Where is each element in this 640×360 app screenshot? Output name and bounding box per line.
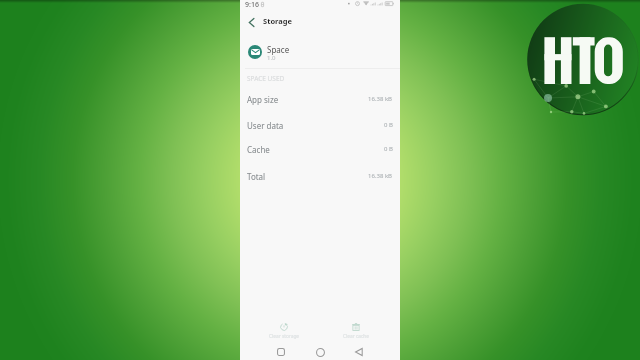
button[interactable]: Back	[339, 344, 379, 360]
button[interactable]: Back	[240, 11, 262, 33]
button[interactable]: App size	[240, 86, 400, 112]
staticText: 0 B	[384, 121, 393, 129]
button[interactable]: Clear storage	[260, 318, 308, 340]
staticText: 1.0	[267, 54, 276, 62]
button[interactable]: Recent apps	[261, 344, 301, 360]
staticText: 16.38 kB	[368, 172, 393, 180]
staticText: Storage	[263, 16, 292, 26]
staticText: 9:16	[245, 0, 259, 10]
staticText: Clear storage	[269, 333, 300, 340]
staticText: SPACE USED	[247, 74, 285, 83]
staticText: Clear cache	[343, 333, 369, 340]
staticText: App size	[247, 94, 279, 105]
staticText: Cache	[247, 144, 270, 155]
button[interactable]: Total	[240, 163, 400, 189]
staticText: Total	[247, 171, 266, 182]
button[interactable]: User data	[240, 112, 400, 138]
button[interactable]: Space	[240, 36, 400, 68]
button[interactable]: Home	[300, 344, 340, 360]
button[interactable]: Clear cache	[332, 318, 380, 340]
staticText: 16.38 kB	[368, 95, 393, 103]
staticText: Space	[267, 44, 290, 55]
staticText: 0 B	[384, 145, 393, 153]
staticText: User data	[247, 120, 284, 131]
button[interactable]: Cache	[240, 136, 400, 162]
